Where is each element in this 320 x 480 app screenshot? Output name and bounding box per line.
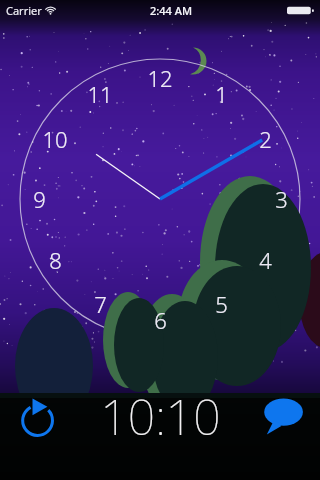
staticText: 1 (215, 79, 228, 109)
staticText: 5 (215, 289, 228, 319)
staticText: 9 (33, 184, 46, 214)
staticText: 10 (42, 124, 68, 154)
staticText: 6 (154, 305, 167, 335)
staticText: 2:44 AM (150, 3, 193, 18)
button[interactable]: Messages (262, 394, 306, 438)
staticText: 8 (49, 245, 62, 275)
staticText: 2 (259, 124, 272, 154)
staticText: 3 (275, 184, 288, 214)
staticText: Carrier (6, 3, 42, 18)
staticText: 10:10 (100, 384, 221, 442)
button[interactable]: Refresh (17, 397, 59, 439)
staticText: 12 (147, 63, 173, 93)
staticText: 7 (94, 289, 107, 319)
staticText: 11 (87, 79, 113, 109)
staticText: 4 (259, 245, 272, 275)
button[interactable]: 10:10 (0, 384, 320, 442)
